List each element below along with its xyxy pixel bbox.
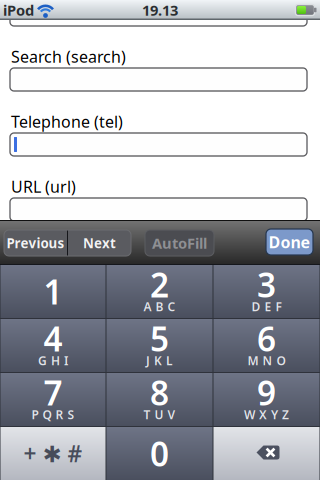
staticText: 1 bbox=[43, 269, 62, 314]
staticText: Telephone (tel) bbox=[11, 111, 123, 132]
button[interactable]: Next bbox=[68, 230, 131, 256]
staticText: D E F bbox=[251, 298, 281, 314]
button[interactable]: 9 bbox=[213, 373, 319, 426]
staticText: 3 bbox=[257, 262, 276, 307]
staticText: G H I bbox=[38, 352, 68, 368]
staticText: Done bbox=[268, 231, 310, 253]
button[interactable]: Delete bbox=[213, 427, 319, 480]
staticText: M N O bbox=[247, 352, 285, 368]
staticText: 4 bbox=[43, 316, 62, 361]
button[interactable]: 4 bbox=[0, 319, 105, 372]
button[interactable]: 8 bbox=[106, 373, 212, 426]
staticText: 2 bbox=[150, 262, 169, 307]
staticText: Next bbox=[83, 234, 116, 252]
staticText: AutoFill bbox=[152, 233, 207, 253]
button[interactable]: Previous bbox=[4, 230, 67, 256]
button[interactable]: AutoFill bbox=[145, 230, 214, 256]
button[interactable]: 2 bbox=[106, 265, 212, 318]
button[interactable]: 5 bbox=[106, 319, 212, 372]
button[interactable]: 0 bbox=[106, 427, 212, 480]
staticText: J K L bbox=[146, 352, 173, 368]
staticText: 0 bbox=[150, 431, 169, 476]
staticText: W X Y Z bbox=[244, 406, 289, 422]
staticText: URL (url) bbox=[11, 176, 76, 197]
button[interactable]: + ✱ # bbox=[0, 427, 105, 480]
staticText: 9 bbox=[257, 370, 276, 415]
button[interactable]: 3 bbox=[213, 265, 319, 318]
button[interactable]: 7 bbox=[0, 373, 105, 426]
staticText: iPod bbox=[3, 0, 34, 20]
button[interactable]: 6 bbox=[213, 319, 319, 372]
staticText: T U V bbox=[143, 406, 175, 422]
staticText: 5 bbox=[150, 316, 169, 361]
staticText: P Q R S bbox=[31, 406, 74, 422]
staticText: 7 bbox=[43, 370, 62, 415]
staticText: Search (search) bbox=[11, 46, 126, 67]
staticText: + ✱ # bbox=[23, 438, 82, 468]
staticText: Previous bbox=[6, 234, 64, 252]
button[interactable]: 1 bbox=[0, 265, 105, 318]
staticText: 8 bbox=[150, 370, 169, 415]
staticText: A B C bbox=[143, 298, 175, 314]
staticText: 6 bbox=[257, 316, 276, 361]
staticText: 19.13 bbox=[142, 0, 178, 20]
button[interactable]: Done bbox=[266, 229, 313, 255]
